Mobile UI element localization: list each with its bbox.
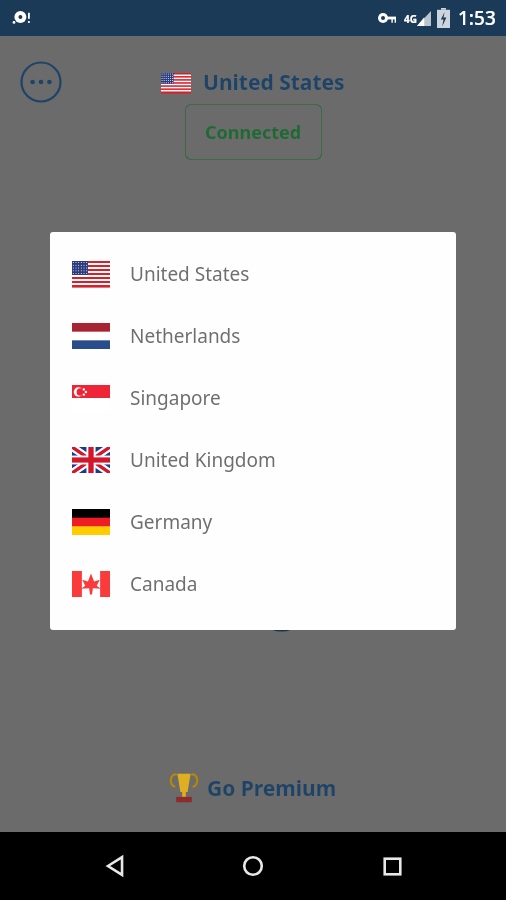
button[interactable]: United Kingdom <box>50 429 456 491</box>
button[interactable]: More options <box>18 59 64 105</box>
staticText: 1:53 <box>458 5 496 31</box>
staticText: Go Premium <box>207 774 337 803</box>
staticText: United States <box>203 68 345 97</box>
button[interactable]: Singapore <box>50 367 456 429</box>
button[interactable]: VPN toggle <box>193 574 313 638</box>
button[interactable]: Home <box>229 842 277 890</box>
staticText: Canada <box>130 571 198 597</box>
staticText: 4G <box>404 12 417 26</box>
staticText: Germany <box>130 509 213 535</box>
staticText: Singapore <box>130 385 221 411</box>
button[interactable]: Go Premium <box>169 771 337 805</box>
button[interactable]: Netherlands <box>50 305 456 367</box>
button[interactable]: Connected <box>185 104 322 160</box>
button[interactable]: United States <box>161 68 345 97</box>
staticText: United States <box>130 261 250 287</box>
staticText: United Kingdom <box>130 447 276 473</box>
button[interactable]: United States <box>50 243 456 305</box>
button[interactable]: Recents <box>368 842 416 890</box>
staticText: Connected <box>205 120 302 145</box>
button[interactable]: Back <box>91 842 139 890</box>
button[interactable]: Canada <box>50 553 456 615</box>
button[interactable]: Germany <box>50 491 456 553</box>
staticText: Netherlands <box>130 323 241 349</box>
